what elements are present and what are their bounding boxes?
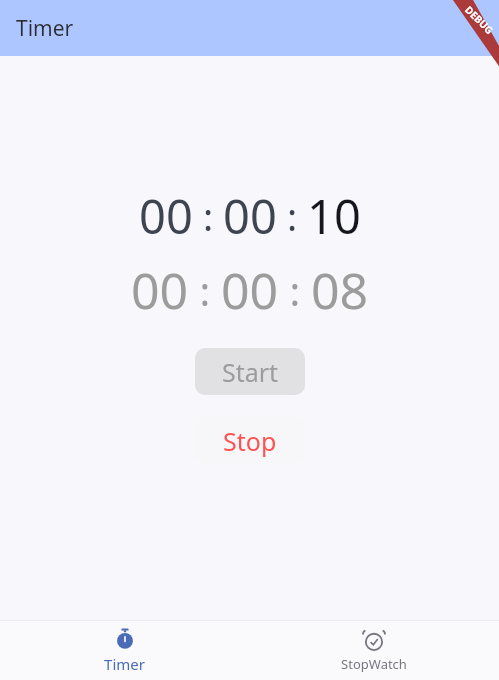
button[interactable]: Timer (0, 620, 249, 680)
staticText: 08 (311, 256, 369, 324)
staticText: Timer (16, 14, 74, 43)
button[interactable]: StopWatch (249, 620, 499, 680)
staticText: : (193, 190, 223, 242)
staticText: 00 (131, 256, 189, 324)
staticText: DEBUG (462, 3, 497, 37)
button[interactable]: Stop (195, 417, 305, 464)
staticText: Timer (104, 654, 145, 674)
staticText: Start (222, 355, 279, 389)
staticText: : (189, 263, 221, 317)
staticText: 00 (223, 184, 277, 248)
staticText: Stop (223, 424, 277, 458)
staticText: 00 (139, 184, 193, 248)
staticText: : (277, 190, 307, 242)
button[interactable]: Start (195, 348, 305, 395)
staticText: 10 (307, 184, 361, 248)
staticText: StopWatch (341, 655, 407, 673)
staticText: 00 (221, 256, 279, 324)
staticText: : (279, 263, 311, 317)
